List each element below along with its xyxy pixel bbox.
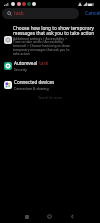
staticText: Choose how long to show temporary messag…: [13, 25, 95, 37]
staticText: Additional settings > Accessibility > Ti…: [13, 36, 73, 56]
button[interactable]: Home: [45, 212, 54, 221]
staticText: task: [38, 60, 49, 66]
staticText: Security: [14, 67, 27, 72]
staticText: Search for more: [0, 96, 100, 100]
staticText: Connected devices: [14, 79, 55, 85]
button[interactable]: Cancel: [82, 8, 100, 19]
button[interactable]: task: [2, 8, 79, 19]
button[interactable]: Recent apps: [22, 212, 31, 221]
button[interactable]: Autoreveal: [0, 57, 100, 75]
button[interactable]: Connected devices: [0, 76, 100, 94]
staticText: Cancel: [85, 10, 100, 17]
staticText: Connection & sharing: [14, 86, 49, 91]
staticText: task: [14, 10, 24, 17]
staticText: Autoreveal: [14, 60, 38, 66]
button[interactable]: Back: [68, 212, 77, 221]
button[interactable]: Choose how long to show temporary messag…: [0, 25, 100, 37]
